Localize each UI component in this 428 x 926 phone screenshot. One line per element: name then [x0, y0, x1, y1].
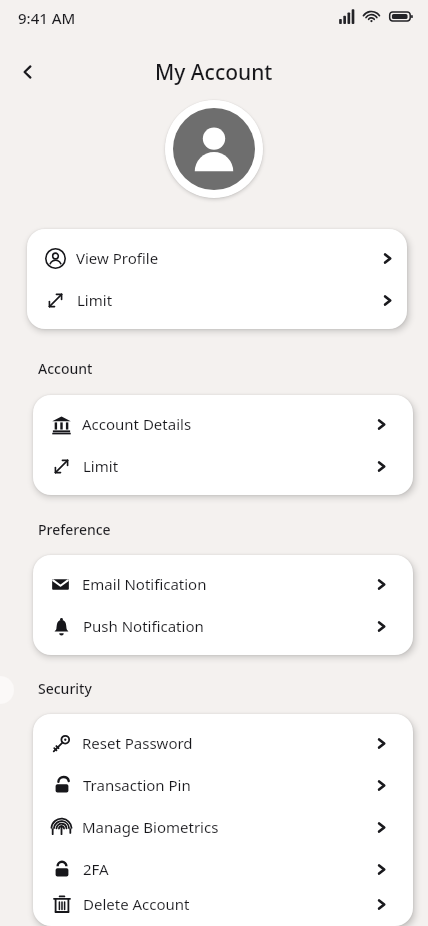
button[interactable]: Email Notification [33, 563, 413, 605]
button[interactable]: Limit [27, 279, 407, 321]
button[interactable]: Limit [33, 445, 413, 487]
staticText: Limit [83, 456, 119, 476]
button[interactable]: Account Details [33, 403, 413, 445]
staticText: 9:41 AM [18, 8, 76, 28]
staticText: Preference [38, 520, 111, 539]
staticText: Delete Account [83, 894, 190, 914]
button[interactable]: Transaction Pin [33, 764, 413, 806]
staticText: My Account [155, 58, 273, 87]
button[interactable]: Back [10, 54, 46, 90]
staticText: Account [38, 359, 93, 378]
button[interactable]: Reset Password [33, 722, 413, 764]
staticText: Email Notification [82, 574, 207, 594]
button[interactable]: Manage Biometrics [33, 806, 413, 848]
button[interactable]: View Profile [27, 237, 407, 279]
staticText: 2FA [83, 859, 109, 879]
staticText: Account Details [82, 414, 192, 434]
button[interactable]: 2FA [33, 848, 413, 890]
staticText: Limit [77, 290, 113, 310]
staticText: Security [38, 679, 92, 698]
staticText: Transaction Pin [83, 775, 191, 795]
staticText: Manage Biometrics [82, 817, 219, 837]
button[interactable]: Delete Account [33, 890, 413, 918]
staticText: View Profile [76, 248, 159, 268]
staticText: Reset Password [82, 733, 193, 753]
staticText: Push Notification [83, 616, 204, 636]
button[interactable]: Push Notification [33, 605, 413, 647]
